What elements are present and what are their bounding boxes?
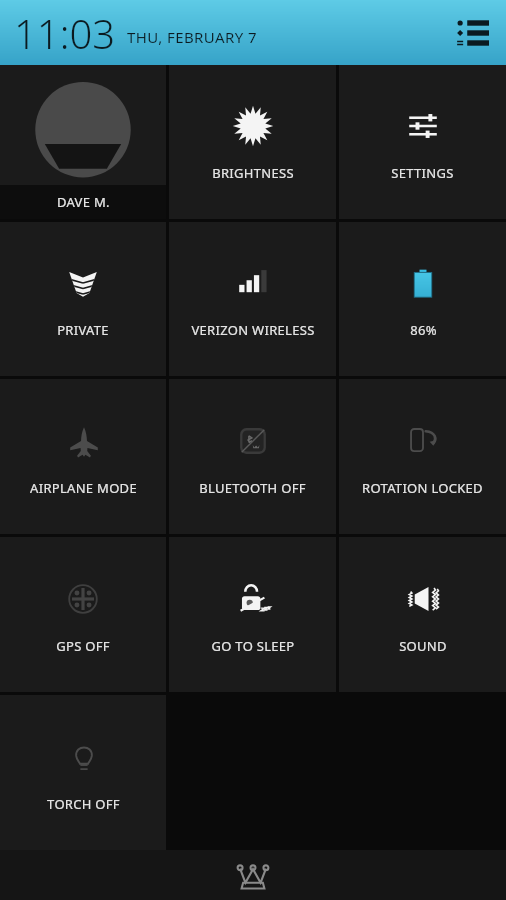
staticText: DAVE M.: [57, 193, 110, 211]
button[interactable]: GPS OFF: [0, 537, 166, 692]
staticText: 11:03: [14, 6, 116, 60]
button[interactable]: BLUETOOTH OFF: [169, 379, 336, 534]
button[interactable]: AIRPLANE MODE: [0, 379, 166, 534]
staticText: SETTINGS: [391, 164, 454, 182]
button[interactable]: BRIGHTNESS: [169, 65, 336, 219]
staticText: AIRPLANE MODE: [30, 479, 137, 497]
staticText: 86%: [410, 321, 437, 339]
staticText: PRIVATE: [57, 321, 109, 339]
button[interactable]: ROTATION LOCKED: [339, 379, 506, 534]
button[interactable]: SOUND: [339, 537, 506, 692]
button[interactable]: VERIZON WIRELESS: [169, 222, 336, 376]
staticText: TORCH OFF: [47, 795, 120, 813]
staticText: BRIGHTNESS: [212, 164, 294, 182]
button[interactable]: TORCH OFF: [0, 695, 166, 850]
staticText: BLUETOOTH OFF: [199, 479, 306, 497]
staticText: THU, FEBRUARY 7: [127, 27, 257, 47]
button[interactable]: Home: [229, 851, 277, 899]
button[interactable]: Profile Dave M.: [0, 65, 166, 219]
button[interactable]: SETTINGS: [339, 65, 506, 219]
staticText: ROTATION LOCKED: [362, 479, 483, 497]
staticText: GPS OFF: [56, 637, 110, 655]
button[interactable]: 86%: [339, 222, 506, 376]
staticText: GO TO SLEEP: [211, 637, 295, 655]
staticText: SOUND: [399, 637, 447, 655]
button[interactable]: Menu: [452, 13, 492, 53]
staticText: VERIZON WIRELESS: [191, 321, 315, 339]
button[interactable]: GO TO SLEEP: [169, 537, 336, 692]
button[interactable]: PRIVATE: [0, 222, 166, 376]
